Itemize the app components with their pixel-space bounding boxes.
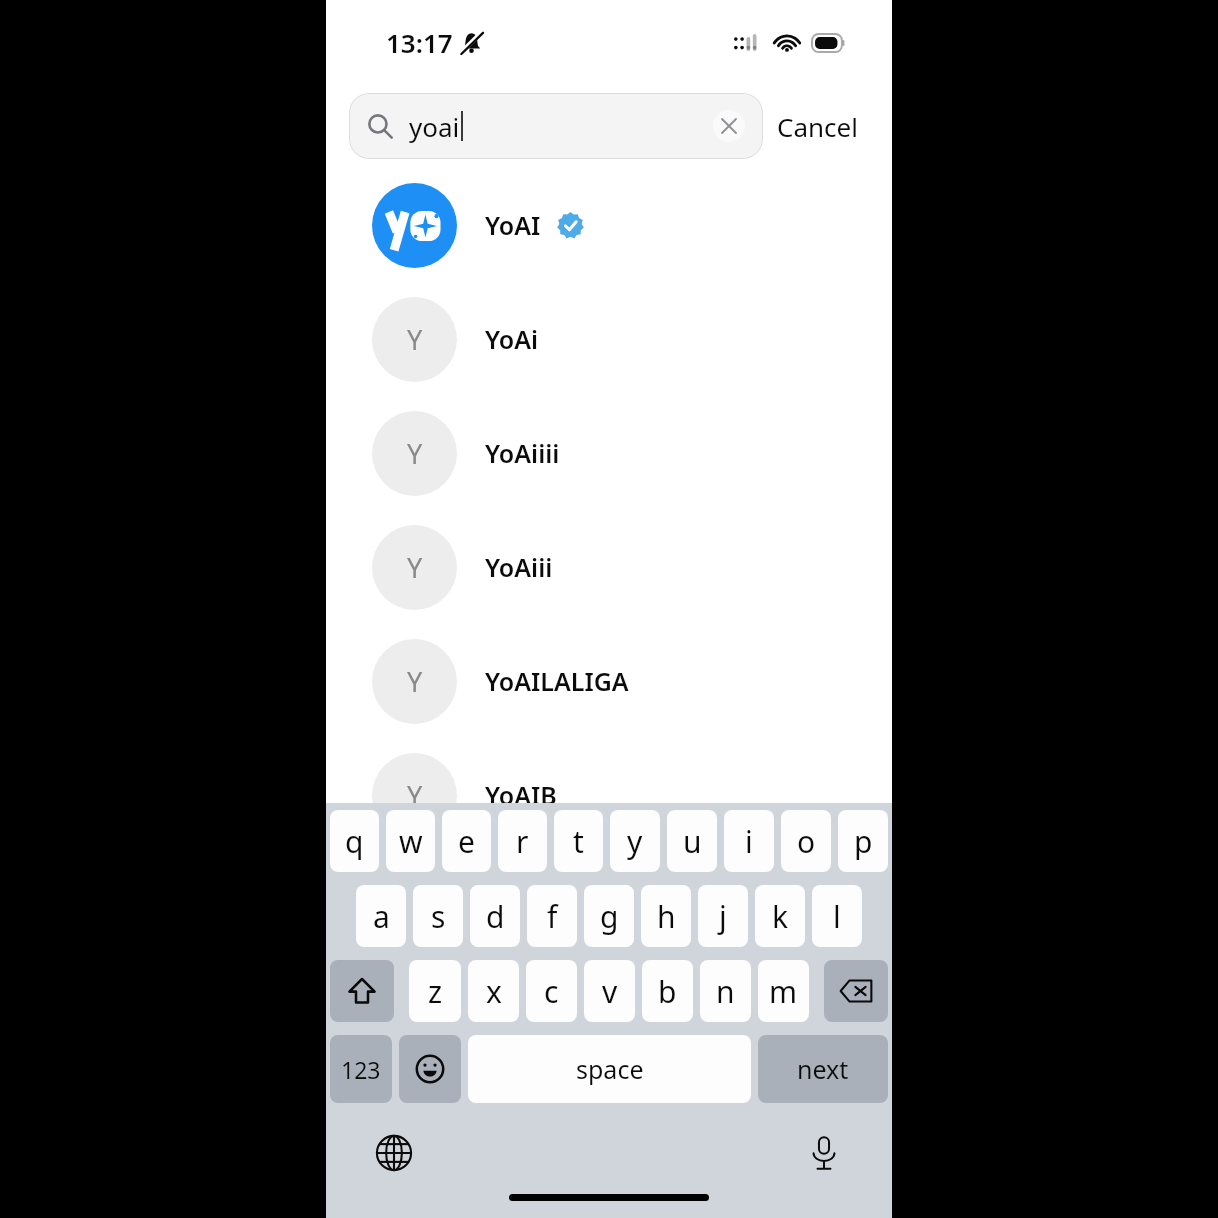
button[interactable]: f (527, 885, 577, 947)
button[interactable]: n (700, 960, 751, 1022)
button[interactable]: YoAI (326, 168, 892, 282)
staticText: x (486, 971, 502, 1012)
button[interactable]: Y (326, 396, 892, 510)
button[interactable]: b (642, 960, 693, 1022)
staticText: YoAI (485, 208, 541, 242)
staticText: j (719, 896, 727, 937)
button[interactable]: e (442, 810, 491, 872)
staticText: f (547, 896, 558, 937)
staticText: l (833, 896, 841, 937)
staticText: Cancel (777, 109, 858, 144)
staticText: space (576, 1052, 644, 1086)
staticText: 13:17 (386, 25, 453, 60)
button[interactable]: q (330, 810, 379, 872)
staticText: w (399, 821, 423, 862)
staticText: q (345, 821, 364, 862)
button[interactable]: Emoji (399, 1035, 461, 1103)
staticText: g (600, 896, 619, 937)
staticText: yoai (409, 109, 460, 144)
button[interactable]: Shift (330, 960, 394, 1022)
staticText: u (683, 821, 702, 862)
staticText: a (373, 896, 390, 937)
staticText: Y (407, 435, 423, 472)
staticText: YoAILALIGA (485, 664, 629, 698)
button[interactable]: next (758, 1035, 888, 1103)
button[interactable]: Clear search (713, 110, 745, 142)
button[interactable]: v (584, 960, 635, 1022)
staticText: Y (407, 321, 423, 358)
button[interactable]: Cancel (763, 101, 872, 152)
staticText: v (602, 971, 618, 1012)
button[interactable]: p (838, 810, 888, 872)
staticText: i (745, 821, 753, 862)
button[interactable]: w (386, 810, 435, 872)
staticText: n (716, 971, 735, 1012)
button[interactable]: m (758, 960, 809, 1022)
button[interactable]: k (755, 885, 805, 947)
button[interactable]: Voice input (800, 1129, 848, 1177)
staticText: YoAIB (485, 778, 557, 812)
button[interactable]: h (641, 885, 691, 947)
button[interactable]: y (610, 810, 660, 872)
staticText: m (769, 971, 798, 1012)
button[interactable]: z (409, 960, 461, 1022)
staticText: s (431, 896, 446, 937)
button[interactable]: space (468, 1035, 751, 1103)
button[interactable]: l (812, 885, 862, 947)
staticText: t (573, 821, 584, 862)
staticText: r (516, 821, 529, 862)
staticText: k (772, 896, 789, 937)
staticText: o (797, 821, 816, 862)
button[interactable]: r (498, 810, 547, 872)
button[interactable]: Backspace (824, 960, 888, 1022)
staticText: YoAiii (485, 550, 553, 584)
staticText: Y (407, 777, 423, 814)
staticText: YoAi (485, 322, 539, 356)
staticText: p (854, 821, 873, 862)
button[interactable]: u (667, 810, 717, 872)
staticText: y (627, 821, 643, 862)
button[interactable]: 123 (330, 1035, 392, 1103)
staticText: e (458, 821, 475, 862)
button[interactable]: s (413, 885, 463, 947)
button[interactable]: d (470, 885, 520, 947)
staticText: d (486, 896, 505, 937)
staticText: Y (407, 549, 423, 586)
button[interactable]: Y (326, 282, 892, 396)
button[interactable]: o (781, 810, 831, 872)
button[interactable]: j (698, 885, 748, 947)
staticText: next (797, 1052, 849, 1086)
button[interactable]: c (526, 960, 577, 1022)
button[interactable]: t (554, 810, 603, 872)
staticText: YoAiiii (485, 436, 560, 470)
staticText: b (658, 971, 677, 1012)
button[interactable]: Y (326, 510, 892, 624)
button[interactable]: g (584, 885, 634, 947)
button[interactable]: Y (326, 738, 892, 852)
button[interactable]: yoai (349, 93, 763, 159)
staticText: 123 (341, 1054, 381, 1085)
staticText: Y (407, 663, 423, 700)
button[interactable]: x (468, 960, 519, 1022)
staticText: z (428, 971, 443, 1012)
button[interactable]: a (356, 885, 406, 947)
staticText: h (657, 896, 676, 937)
button[interactable]: Y (326, 624, 892, 738)
button[interactable]: i (724, 810, 774, 872)
button[interactable]: Change keyboard language (370, 1129, 418, 1177)
staticText: c (544, 971, 559, 1012)
